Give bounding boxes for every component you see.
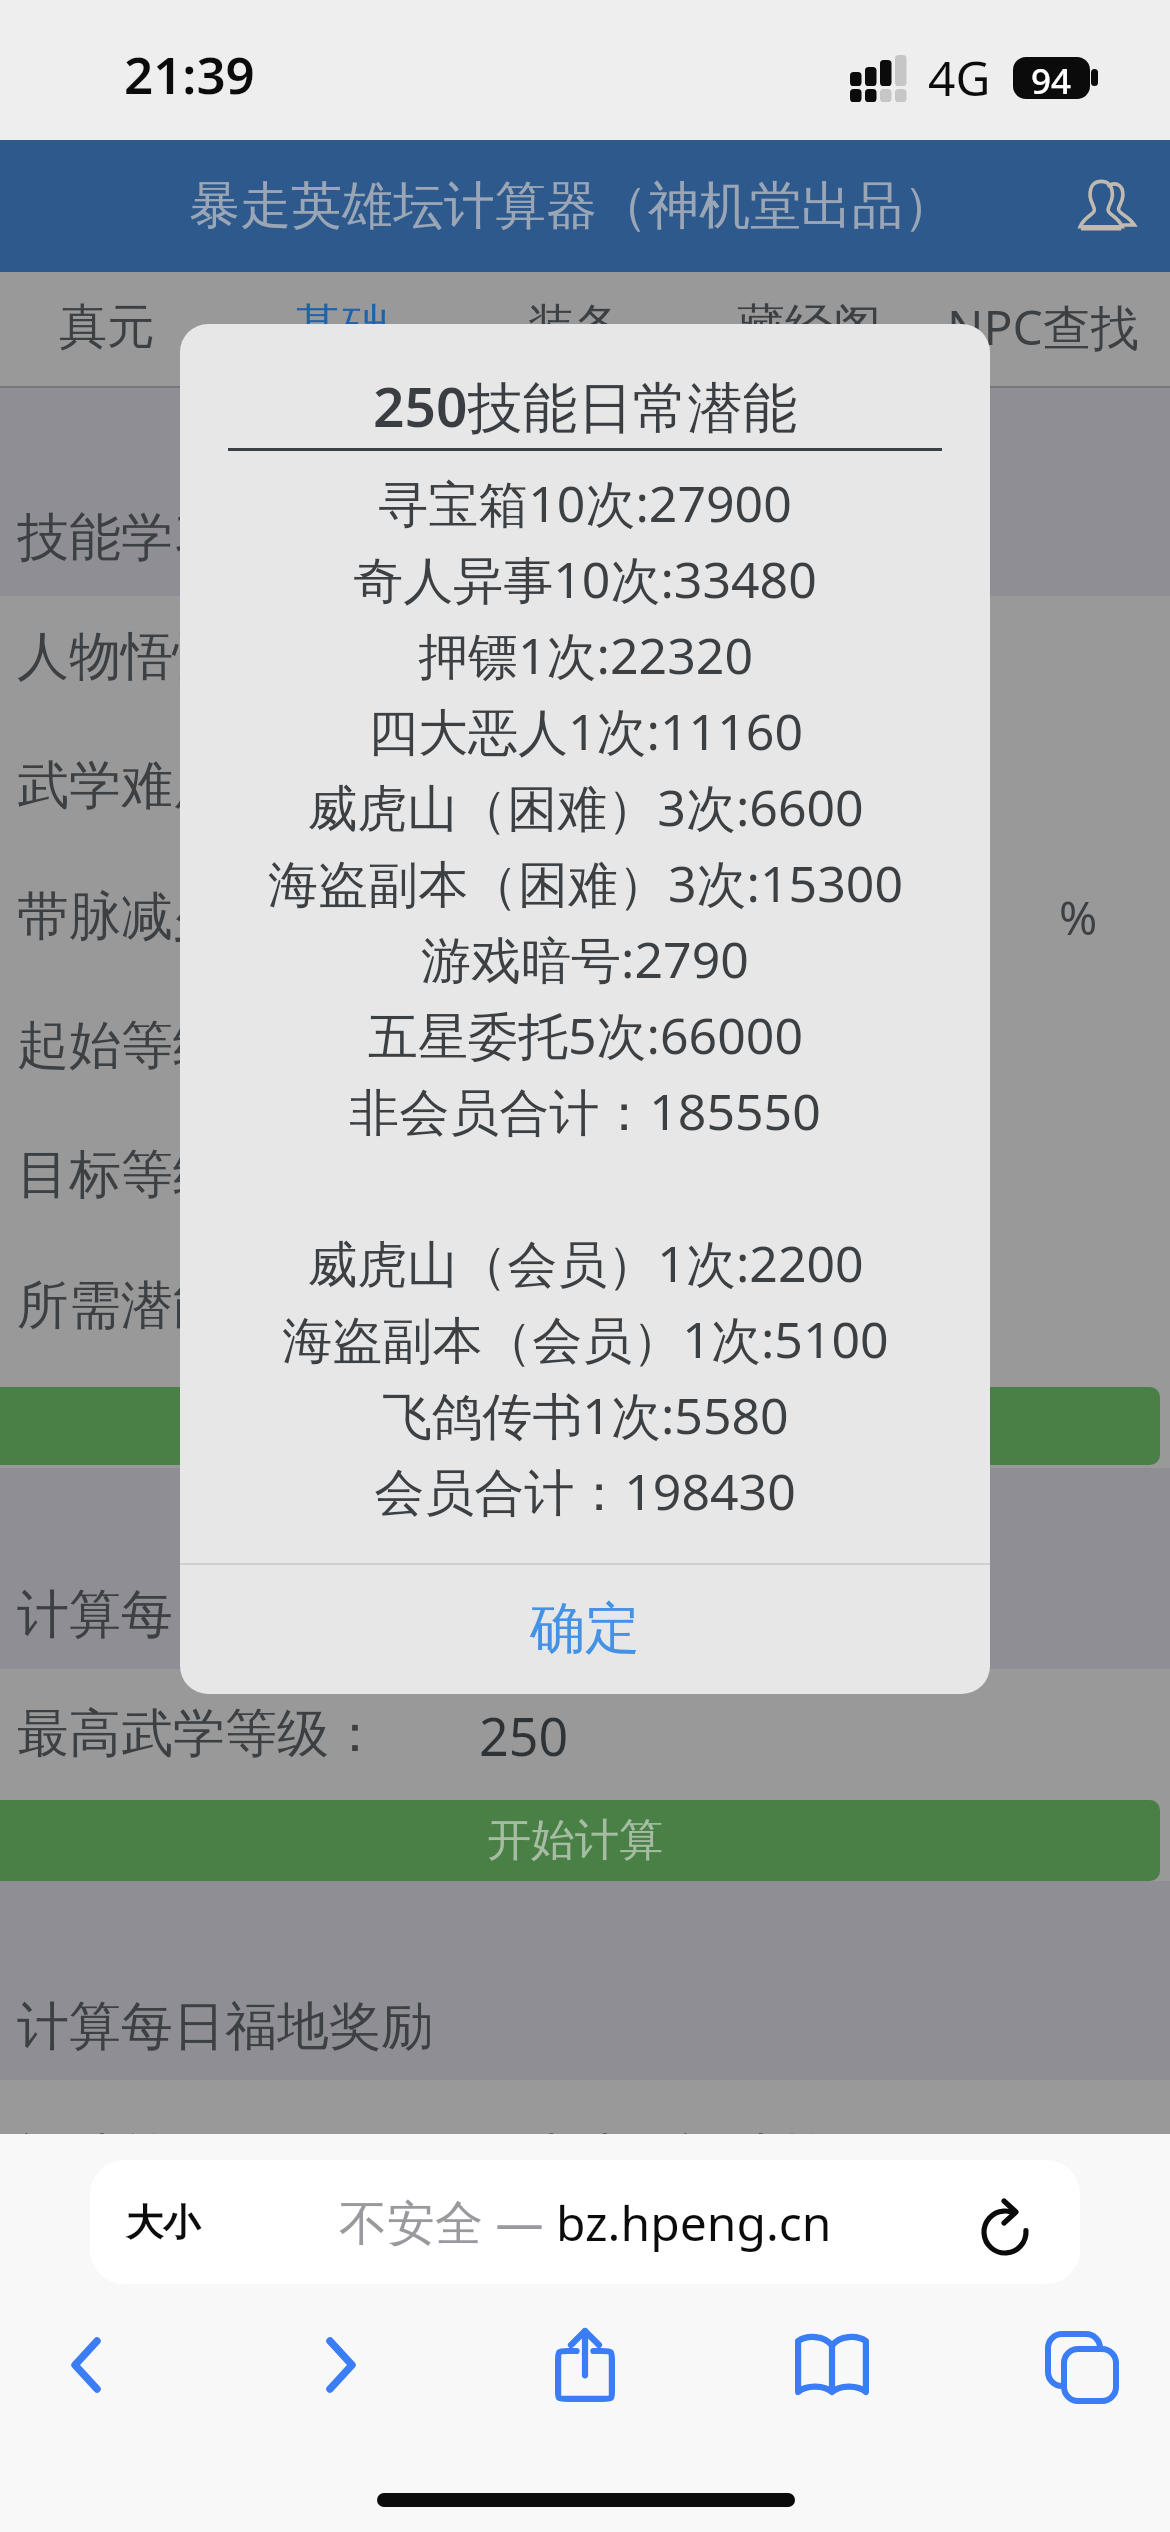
staticText: 4G — [928, 45, 991, 110]
staticText: 目标等级 — [17, 1142, 225, 1208]
staticText: 真元 — [59, 297, 155, 357]
staticText: 会员合计：198430 — [374, 1457, 796, 1525]
staticText: 大小 — [126, 2199, 200, 2246]
staticText: 最高武学等级： — [17, 1701, 381, 1767]
button[interactable]: 所需潜能 — [0, 1251, 1170, 1361]
staticText: 威虎山（会员）1次:2200 — [307, 1229, 864, 1297]
staticText: 带脉减少 — [17, 884, 225, 950]
button[interactable]: 藏经阁 — [702, 272, 936, 388]
button[interactable]: 武学难度 — [0, 731, 1170, 841]
staticText: NPC查找 — [947, 294, 1139, 360]
button[interactable]: 开始计算 — [0, 1800, 1160, 1881]
button[interactable]: Share — [527, 2307, 643, 2423]
staticText: 押镖1次:22320 — [418, 621, 753, 689]
staticText: 海盗副本（困难）3次:15300 — [268, 849, 903, 917]
button[interactable]: 计算每日福地奖励 — [0, 1972, 1170, 2082]
button[interactable]: 目标等级 — [0, 1120, 1170, 1230]
staticText: 飞鸽传书1次:5580 — [382, 1381, 789, 1449]
staticText: 五星委托5次:66000 — [368, 1001, 803, 1069]
staticText: 不安全 — — [339, 2189, 556, 2255]
staticText: 94 — [1031, 57, 1072, 99]
button[interactable]: Reload — [968, 2182, 1048, 2262]
staticText: % — [1059, 886, 1098, 949]
staticText: 开始计算 — [487, 1813, 663, 1868]
staticText: 四大恶人1次:11160 — [368, 697, 803, 765]
staticText: 装备 — [527, 297, 623, 357]
button[interactable]: NPC查找 — [936, 272, 1170, 388]
staticText: 暴走英雄坛计算器（神机堂出品） — [189, 174, 954, 238]
button[interactable]: 确定 — [180, 1563, 990, 1694]
button[interactable]: Tabs — [1022, 2307, 1138, 2423]
staticText: 起始等级 — [17, 1013, 225, 1079]
button[interactable] — [0, 1387, 1160, 1465]
staticText: 威虎山（困难）3次:6600 — [307, 773, 864, 841]
staticText: 游戏暗号:2790 — [421, 925, 749, 993]
button[interactable]: Bookmarks — [774, 2307, 890, 2423]
button[interactable]: 最高武学等级： — [0, 1679, 1170, 1789]
staticText: 21:39 — [124, 39, 255, 108]
staticText: 寻宝箱10次:27900 — [378, 469, 792, 537]
button[interactable]: 人物悟性 — [0, 602, 1170, 712]
staticText: 确定 — [530, 1594, 640, 1663]
staticText: 藏经阁 — [737, 297, 881, 357]
button[interactable]: 起始等级 — [0, 991, 1170, 1101]
button[interactable]: 技能学习 — [0, 483, 1170, 593]
staticText: 武学难度 — [17, 753, 225, 819]
button[interactable]: 真元 — [0, 272, 234, 388]
staticText: 请选择福地等级 — [520, 2126, 884, 2192]
staticText: 计算每日潜能 — [17, 1582, 329, 1648]
staticText: 250 — [479, 1700, 569, 1771]
staticText: bz.hpeng.cn — [556, 2190, 832, 2255]
staticText: 奇人异事10次:33480 — [353, 545, 817, 613]
button[interactable]: Account — [1054, 156, 1154, 256]
button[interactable]: 装备 — [468, 272, 702, 388]
button[interactable]: Forward — [283, 2307, 399, 2423]
staticText: 计算每日福地奖励 — [17, 1994, 433, 2060]
staticText: 海盗副本（会员）1次:5100 — [282, 1305, 889, 1373]
button[interactable]: 带脉减少 — [0, 862, 1170, 972]
button[interactable]: 计算每日潜能 — [0, 1560, 1170, 1670]
staticText: 技能学习 — [17, 505, 225, 571]
staticText: 所需潜能 — [17, 1273, 225, 1339]
button[interactable]: Back — [28, 2307, 144, 2423]
staticText: 非会员合计：185550 — [349, 1077, 821, 1145]
staticText: 250技能日常潜能 — [373, 368, 798, 443]
button[interactable]: 大小 — [90, 2160, 1080, 2284]
staticText: 基础 — [293, 297, 389, 357]
button[interactable]: 基础 — [234, 272, 468, 388]
staticText: 福地等级： — [17, 2126, 277, 2192]
staticText: 人物悟性 — [17, 624, 225, 690]
